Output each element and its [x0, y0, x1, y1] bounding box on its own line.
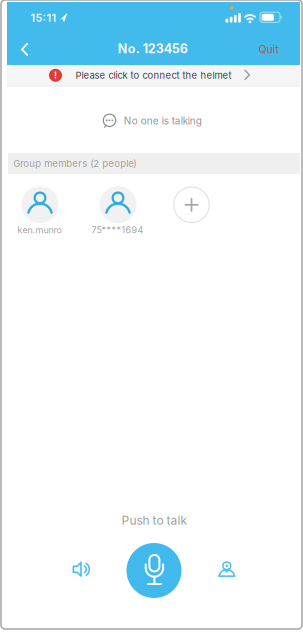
staticText: 15:11 [30, 11, 56, 24]
staticText: No one is talking [124, 115, 202, 127]
staticText: Group members (2 people) [13, 158, 136, 169]
button[interactable]: Add member [174, 187, 209, 223]
staticText: No. 123456 [118, 41, 188, 56]
button[interactable]: Speaker [64, 552, 98, 586]
staticText: ken.munro [17, 225, 61, 236]
button[interactable]: Push to talk [126, 543, 181, 598]
staticText: 75****1694 [91, 225, 143, 236]
button[interactable]: ken.munro [6, 186, 74, 238]
button[interactable]: Back [9, 34, 39, 64]
button[interactable]: Quit [249, 35, 289, 63]
staticText: Please click to connect the helmet [75, 70, 231, 81]
staticText: Push to talk [121, 513, 187, 528]
staticText: Quit [259, 43, 279, 56]
button[interactable]: 75****1694 [84, 186, 152, 238]
button[interactable]: ! [7, 65, 300, 86]
staticText: ! [54, 70, 57, 81]
button[interactable]: Members [210, 552, 244, 586]
